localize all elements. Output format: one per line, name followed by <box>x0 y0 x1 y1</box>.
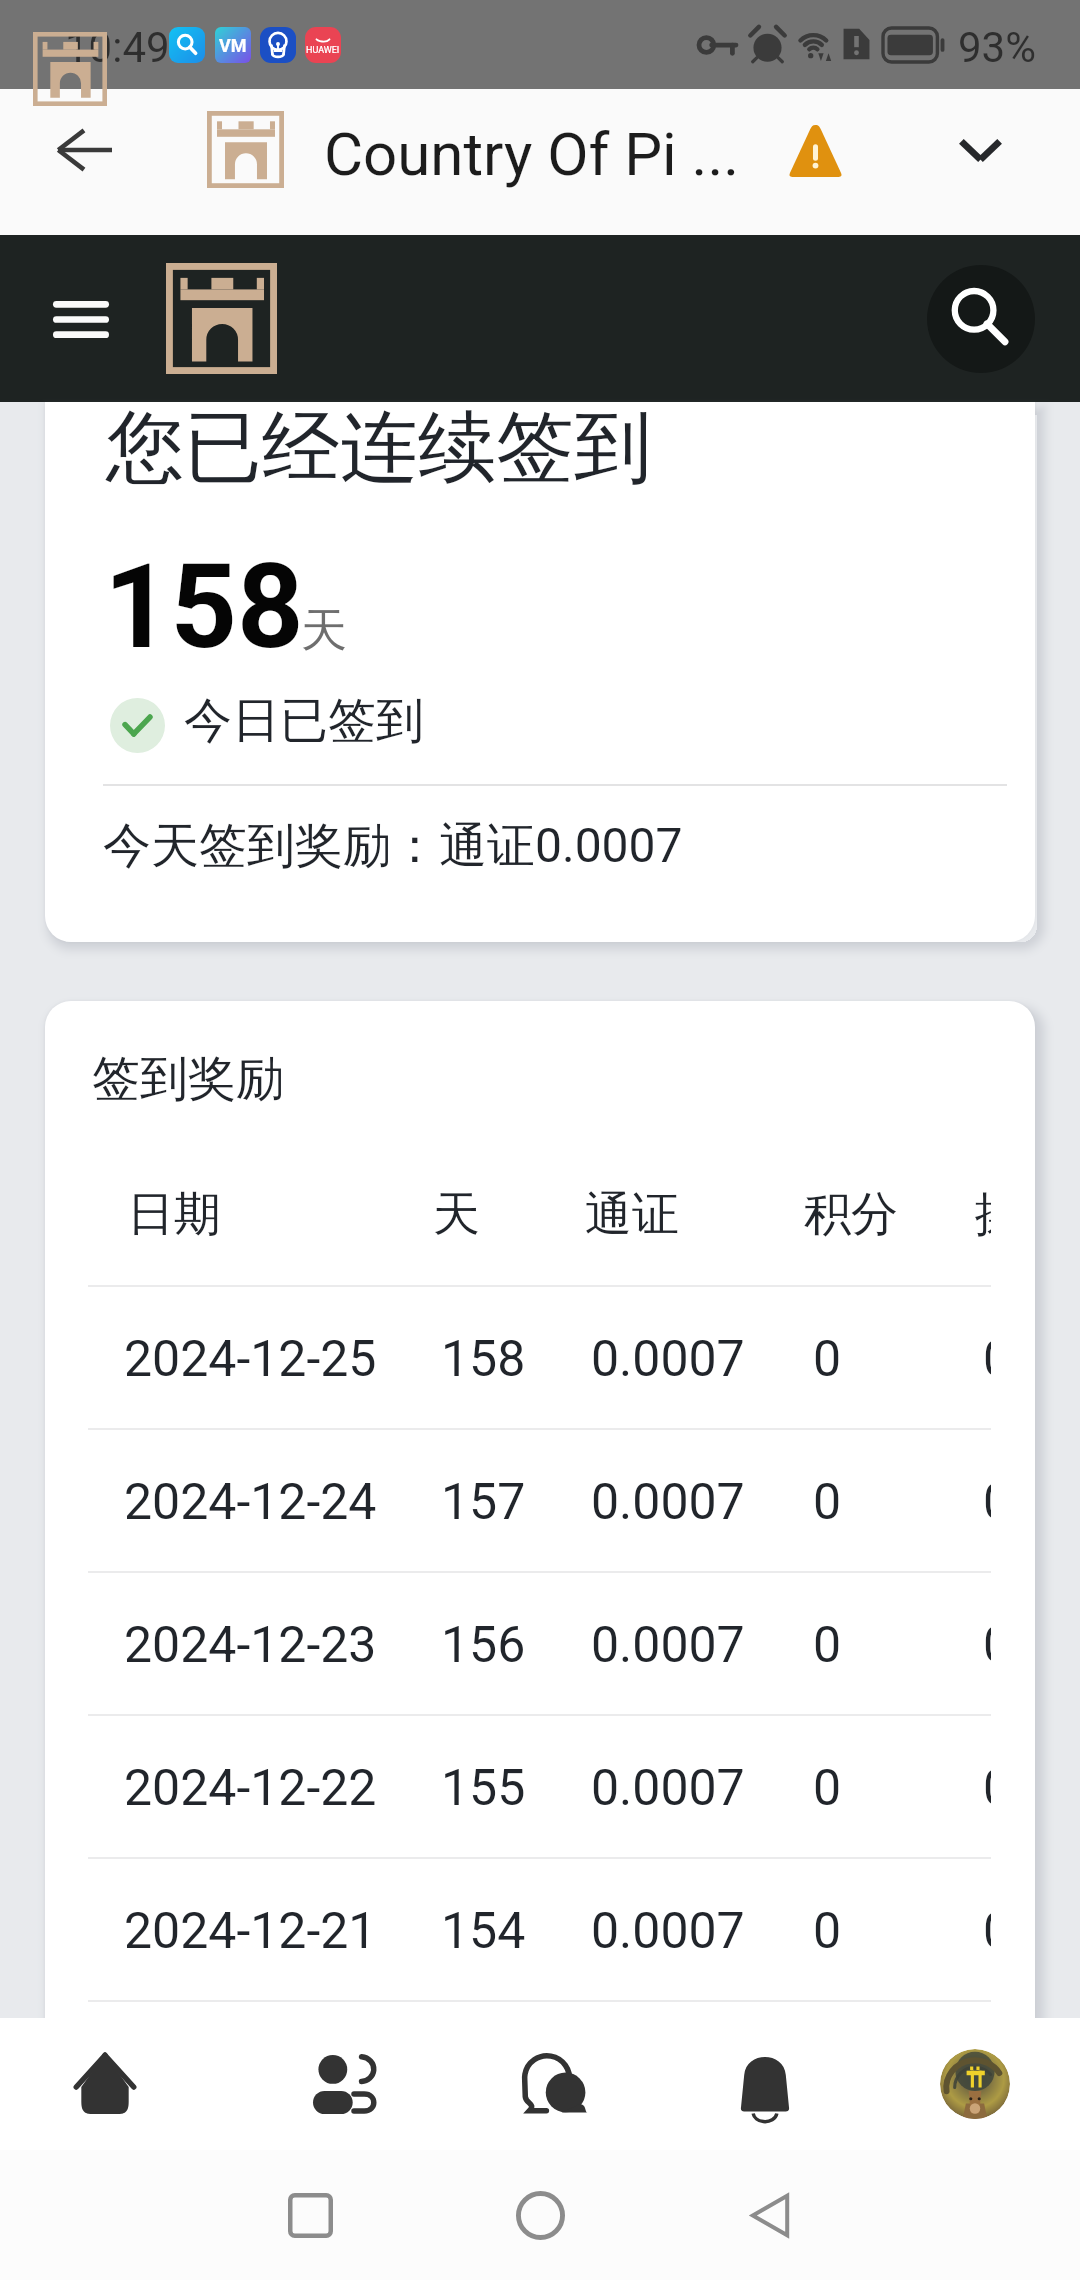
staticText: 0.0007 <box>591 1759 745 1818</box>
staticText: 0 <box>813 1902 842 1961</box>
staticText: 0 <box>983 1759 991 1818</box>
button[interactable]: Back <box>29 95 139 205</box>
staticText: 0 <box>983 1473 991 1532</box>
staticText: 天 <box>433 1185 480 1244</box>
staticText: 154 <box>441 1902 526 1961</box>
staticText: 0 <box>813 1759 842 1818</box>
staticText: 0 <box>983 1616 991 1675</box>
staticText: 2024-12-25 <box>124 1330 377 1389</box>
staticText: 0 <box>983 1330 991 1389</box>
staticText: 158 <box>104 539 304 675</box>
staticText: 10:49 <box>65 23 170 72</box>
staticText: 0.0007 <box>591 1616 745 1675</box>
button[interactable]: Recents <box>195 2150 425 2280</box>
button[interactable]: Menu <box>27 265 135 373</box>
staticText: 2024-12-23 <box>124 1616 377 1675</box>
staticText: 93% <box>958 23 1036 72</box>
staticText: Country Of Pi ... <box>324 119 740 189</box>
button[interactable]: Back <box>655 2150 885 2280</box>
staticText: 今天签到奖励：通证0.0007 <box>103 816 683 876</box>
staticText: 通证 <box>585 1185 679 1244</box>
button[interactable] <box>45 1857 991 2000</box>
button[interactable] <box>45 1571 991 1714</box>
staticText: 今日已签到 <box>184 691 424 751</box>
staticText: 157 <box>441 1473 526 1532</box>
staticText: 操作 <box>975 1185 991 1244</box>
staticText: 156 <box>441 1616 526 1675</box>
staticText: 158 <box>441 1330 526 1389</box>
staticText: 日期 <box>127 1185 221 1244</box>
staticText: 天 <box>301 602 347 660</box>
staticText: VM <box>219 35 247 56</box>
staticText: 0.0007 <box>591 1473 745 1532</box>
button[interactable]: Notifications <box>705 2018 825 2150</box>
staticText: 0.0007 <box>591 1330 745 1389</box>
button[interactable] <box>45 1428 991 1571</box>
button[interactable]: Home <box>45 2018 165 2150</box>
staticText: 您已经连续签到 <box>106 402 652 497</box>
staticText: 2024-12-22 <box>124 1759 377 1818</box>
staticText: 0 <box>813 1616 842 1675</box>
button[interactable]: People <box>285 2018 405 2150</box>
staticText: 2024-12-21 <box>124 1902 377 1961</box>
staticText: HUAWEI <box>306 45 340 56</box>
staticText: 0.0007 <box>591 1902 745 1961</box>
button[interactable] <box>45 1285 991 1428</box>
button[interactable] <box>45 1714 991 1857</box>
button[interactable]: Expand <box>930 100 1030 200</box>
button[interactable]: Home <box>425 2150 655 2280</box>
staticText: 0 <box>813 1330 842 1389</box>
staticText: 0 <box>813 1473 842 1532</box>
staticText: 0 <box>983 1902 991 1961</box>
button[interactable]: Chat <box>495 2018 615 2150</box>
staticText: 签到奖励 <box>92 1049 284 1109</box>
button[interactable]: Search <box>927 265 1035 373</box>
staticText: 155 <box>441 1759 526 1818</box>
staticText: 2024-12-24 <box>124 1473 377 1532</box>
staticText: 积分 <box>804 1185 898 1244</box>
button[interactable]: Profile <box>915 2018 1035 2150</box>
